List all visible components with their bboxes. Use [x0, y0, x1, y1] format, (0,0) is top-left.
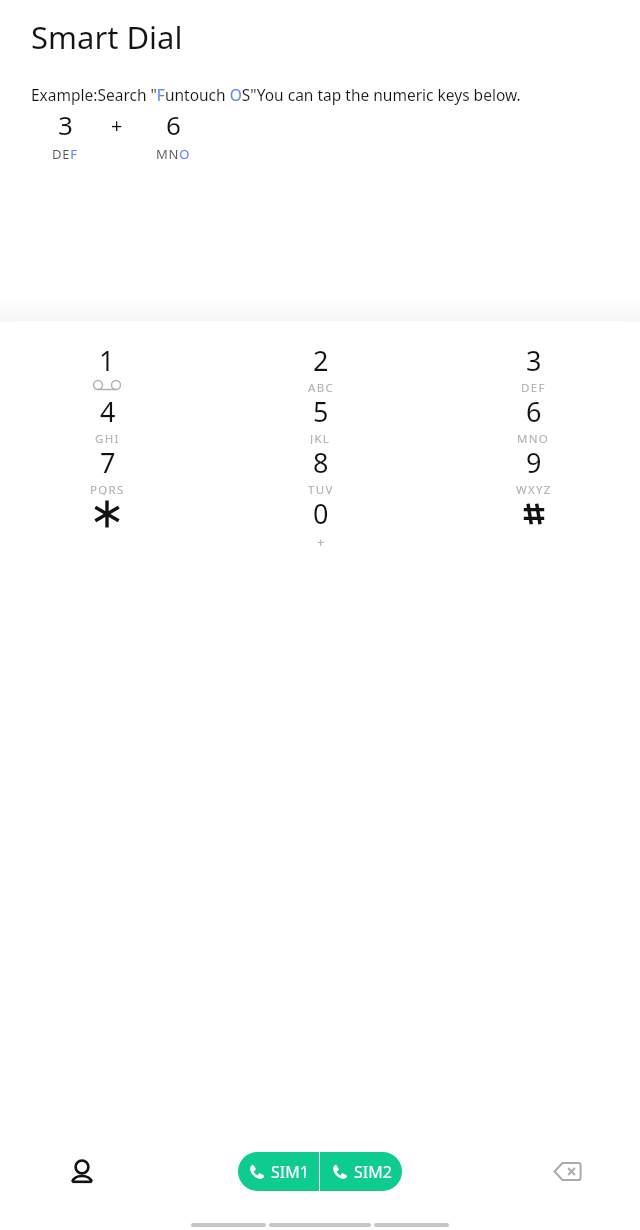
button[interactable]: Star: [0, 495, 214, 553]
staticText: DEF: [521, 380, 546, 393]
staticText: 1: [99, 342, 115, 379]
button[interactable]: 8: [214, 444, 427, 495]
staticText: WXYZ: [516, 482, 552, 495]
staticText: 5: [313, 393, 329, 430]
staticText: 6: [166, 107, 181, 142]
staticText: +: [317, 533, 325, 551]
button[interactable]: 9: [427, 444, 640, 495]
staticText: 4: [100, 393, 116, 430]
button[interactable]: Home: [269, 1223, 371, 1227]
staticText: PQRS: [90, 482, 125, 495]
button[interactable]: Pound: [427, 495, 640, 553]
button[interactable]: 3: [427, 342, 640, 393]
button[interactable]: Backspace: [540, 1144, 594, 1198]
staticText: 6: [526, 393, 542, 430]
staticText: GHI: [95, 431, 120, 444]
staticText: ABC: [308, 380, 334, 393]
button[interactable]: 0: [214, 495, 427, 553]
button[interactable]: 5: [214, 393, 427, 444]
staticText: 0: [313, 495, 329, 532]
staticText: DEF: [52, 145, 78, 163]
button[interactable]: SIM1: [238, 1152, 319, 1191]
button[interactable]: 2: [214, 342, 427, 393]
button[interactable]: SIM2: [320, 1152, 402, 1191]
staticText: JKL: [310, 431, 331, 444]
staticText: 7: [100, 444, 116, 481]
button[interactable]: 6: [427, 393, 640, 444]
button[interactable]: Back: [374, 1223, 449, 1227]
button[interactable]: Recents: [191, 1223, 266, 1227]
staticText: Example:Search "Funtouch OS"You can tap …: [31, 84, 521, 105]
staticText: 3: [58, 107, 73, 142]
staticText: MNO: [156, 145, 191, 163]
button[interactable]: 1: [0, 342, 214, 393]
staticText: 2: [313, 342, 329, 379]
staticText: MNO: [517, 431, 550, 444]
button[interactable]: 4: [0, 393, 214, 444]
staticText: 9: [526, 444, 542, 481]
staticText: +: [111, 112, 123, 139]
staticText: 3: [526, 342, 542, 379]
button[interactable]: Contacts: [55, 1144, 109, 1198]
button[interactable]: 7: [0, 444, 214, 495]
staticText: SIM2: [354, 1161, 392, 1183]
staticText: Smart Dial: [31, 16, 183, 58]
staticText: 8: [313, 444, 329, 481]
staticText: SIM1: [271, 1161, 309, 1183]
staticText: TUV: [308, 482, 334, 495]
